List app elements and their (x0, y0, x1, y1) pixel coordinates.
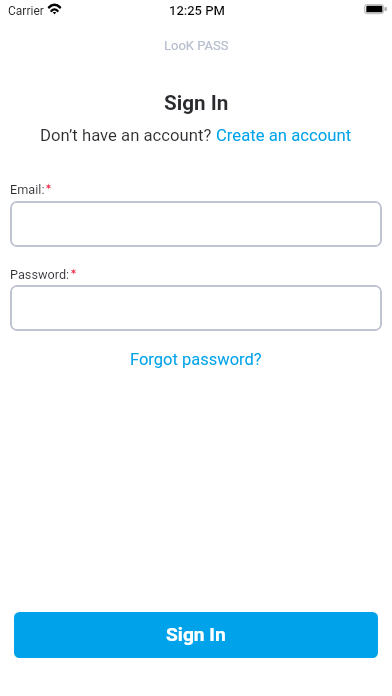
staticText: Sign In (164, 91, 229, 115)
button[interactable] (10, 285, 382, 331)
staticText: Email: (10, 182, 45, 197)
staticText: Forgot password? (130, 350, 262, 369)
staticText: Carrier (8, 4, 44, 18)
other: Battery full (364, 4, 388, 15)
button[interactable]: Forgot password? (130, 350, 262, 369)
staticText: LooK PASS (164, 38, 229, 53)
button[interactable]: Create an account (216, 126, 352, 146)
staticText: Sign In (166, 623, 226, 646)
staticText: 12:25 PM (169, 3, 225, 18)
staticText: Password: (10, 267, 70, 282)
other: Wi-Fi signal (46, 3, 63, 16)
button[interactable] (10, 201, 382, 247)
staticText: Don’t have an account? (40, 126, 216, 146)
staticText: Create an account (216, 126, 352, 146)
button[interactable]: Sign In (14, 612, 378, 658)
